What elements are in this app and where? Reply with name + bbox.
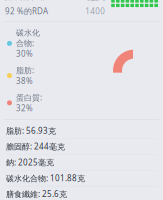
staticText: 92 %的RDA [5, 6, 48, 16]
staticText: 1400 [85, 6, 105, 16]
staticText: 蛋白質: 32% [16, 92, 42, 113]
staticText: 攝取的卡路里 [5, 0, 53, 1]
staticText: 膽固醇: 244毫克 [6, 141, 65, 152]
staticText: 脂肪: 56.93克 [6, 125, 56, 136]
staticText: 碳水化合物: 101.88克 [6, 173, 85, 183]
staticText: 碳水化合物: 30% [16, 28, 40, 59]
staticText: 1294 [85, 0, 105, 3]
staticText: 鈉: 2025毫克 [6, 157, 54, 168]
staticText: 膳食纖維: 25.6克 [6, 189, 67, 199]
staticText: 脂肪: 38% [16, 65, 34, 86]
